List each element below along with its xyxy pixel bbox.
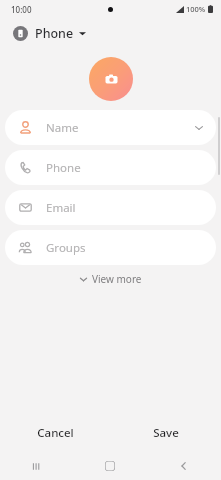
button[interactable]: Phone (0, 18, 221, 48)
button[interactable]: Recent apps (0, 452, 73, 480)
button[interactable]: Back (147, 452, 221, 480)
button[interactable]: Home (73, 452, 147, 480)
button[interactable]: Cancel (0, 414, 110, 452)
staticText: View more (92, 272, 142, 286)
button[interactable]: Name (5, 110, 216, 145)
button[interactable]: Email (5, 190, 216, 225)
staticText: Groups (46, 240, 86, 256)
button[interactable]: Phone (5, 150, 216, 185)
staticText: Cancel (37, 425, 74, 441)
button[interactable]: View more (0, 265, 221, 293)
staticText: Email (46, 200, 76, 216)
staticText: Name (46, 120, 79, 136)
button[interactable]: Groups (5, 230, 216, 265)
staticText: 10:00 (11, 4, 32, 15)
staticText: Phone (35, 25, 74, 42)
button[interactable]: Add contact photo (89, 57, 133, 101)
staticText: Save (153, 425, 179, 441)
staticText: Phone (46, 160, 81, 176)
staticText: 100% (186, 4, 206, 14)
button[interactable]: Save (110, 414, 221, 452)
